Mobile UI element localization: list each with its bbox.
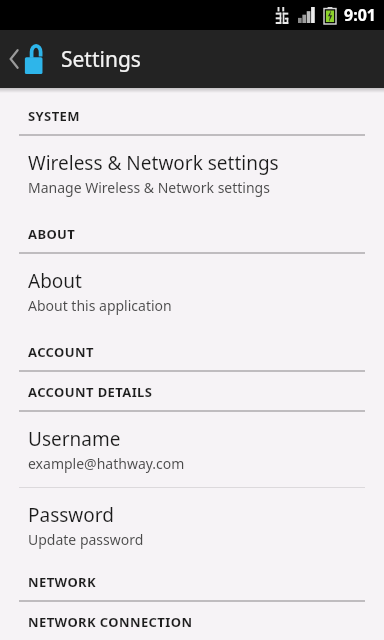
staticText: Username [28,426,121,452]
staticText: example@hathway.com [28,454,185,473]
button[interactable]: Password [0,488,384,563]
staticText: NETWORK [28,573,97,591]
staticText: Password [28,502,114,528]
staticText: ACCOUNT [28,343,94,361]
button[interactable]: Navigate up, Settings [0,30,384,88]
button[interactable]: About [0,254,384,329]
staticText: Wireless & Network settings [28,150,279,176]
staticText: About [28,268,82,294]
staticText: ABOUT [28,225,76,243]
staticText: 9:01 [344,4,376,26]
staticText: SYSTEM [28,107,80,125]
staticText: ACCOUNT DETAILS [28,383,153,401]
staticText: Manage Wireless & Network settings [28,178,270,197]
staticText: Settings [61,45,141,74]
staticText: NETWORK CONNECTION [28,613,193,631]
button[interactable]: Username [0,412,384,487]
button[interactable]: Wireless & Network settings [0,136,384,211]
staticText: Update password [28,530,144,549]
staticText: About this application [28,296,172,315]
